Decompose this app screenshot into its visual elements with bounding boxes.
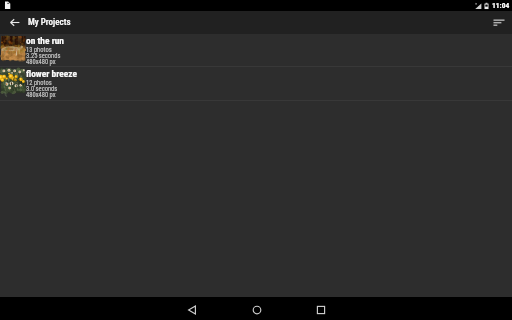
button[interactable]: Recent apps (301, 297, 341, 320)
button[interactable]: Sort (488, 11, 510, 34)
button[interactable]: Home (237, 297, 277, 320)
button[interactable]: on the run (0, 34, 512, 67)
staticText: 13 photos (26, 46, 52, 54)
staticText: My Projects (28, 17, 71, 28)
staticText: 11:04 (492, 1, 510, 10)
staticText: 3.25 seconds (26, 52, 61, 60)
button[interactable]: flower breeze (0, 67, 512, 100)
staticText: 480x480 px (26, 58, 56, 66)
staticText: flower breeze (26, 68, 77, 79)
staticText: 480x480 px (26, 91, 56, 99)
button[interactable]: Navigate up (4, 11, 26, 34)
button[interactable]: Back (172, 297, 212, 320)
staticText: on the run (26, 35, 64, 46)
staticText: 12 photos (26, 79, 52, 87)
staticText: 3.0 seconds (26, 85, 58, 93)
